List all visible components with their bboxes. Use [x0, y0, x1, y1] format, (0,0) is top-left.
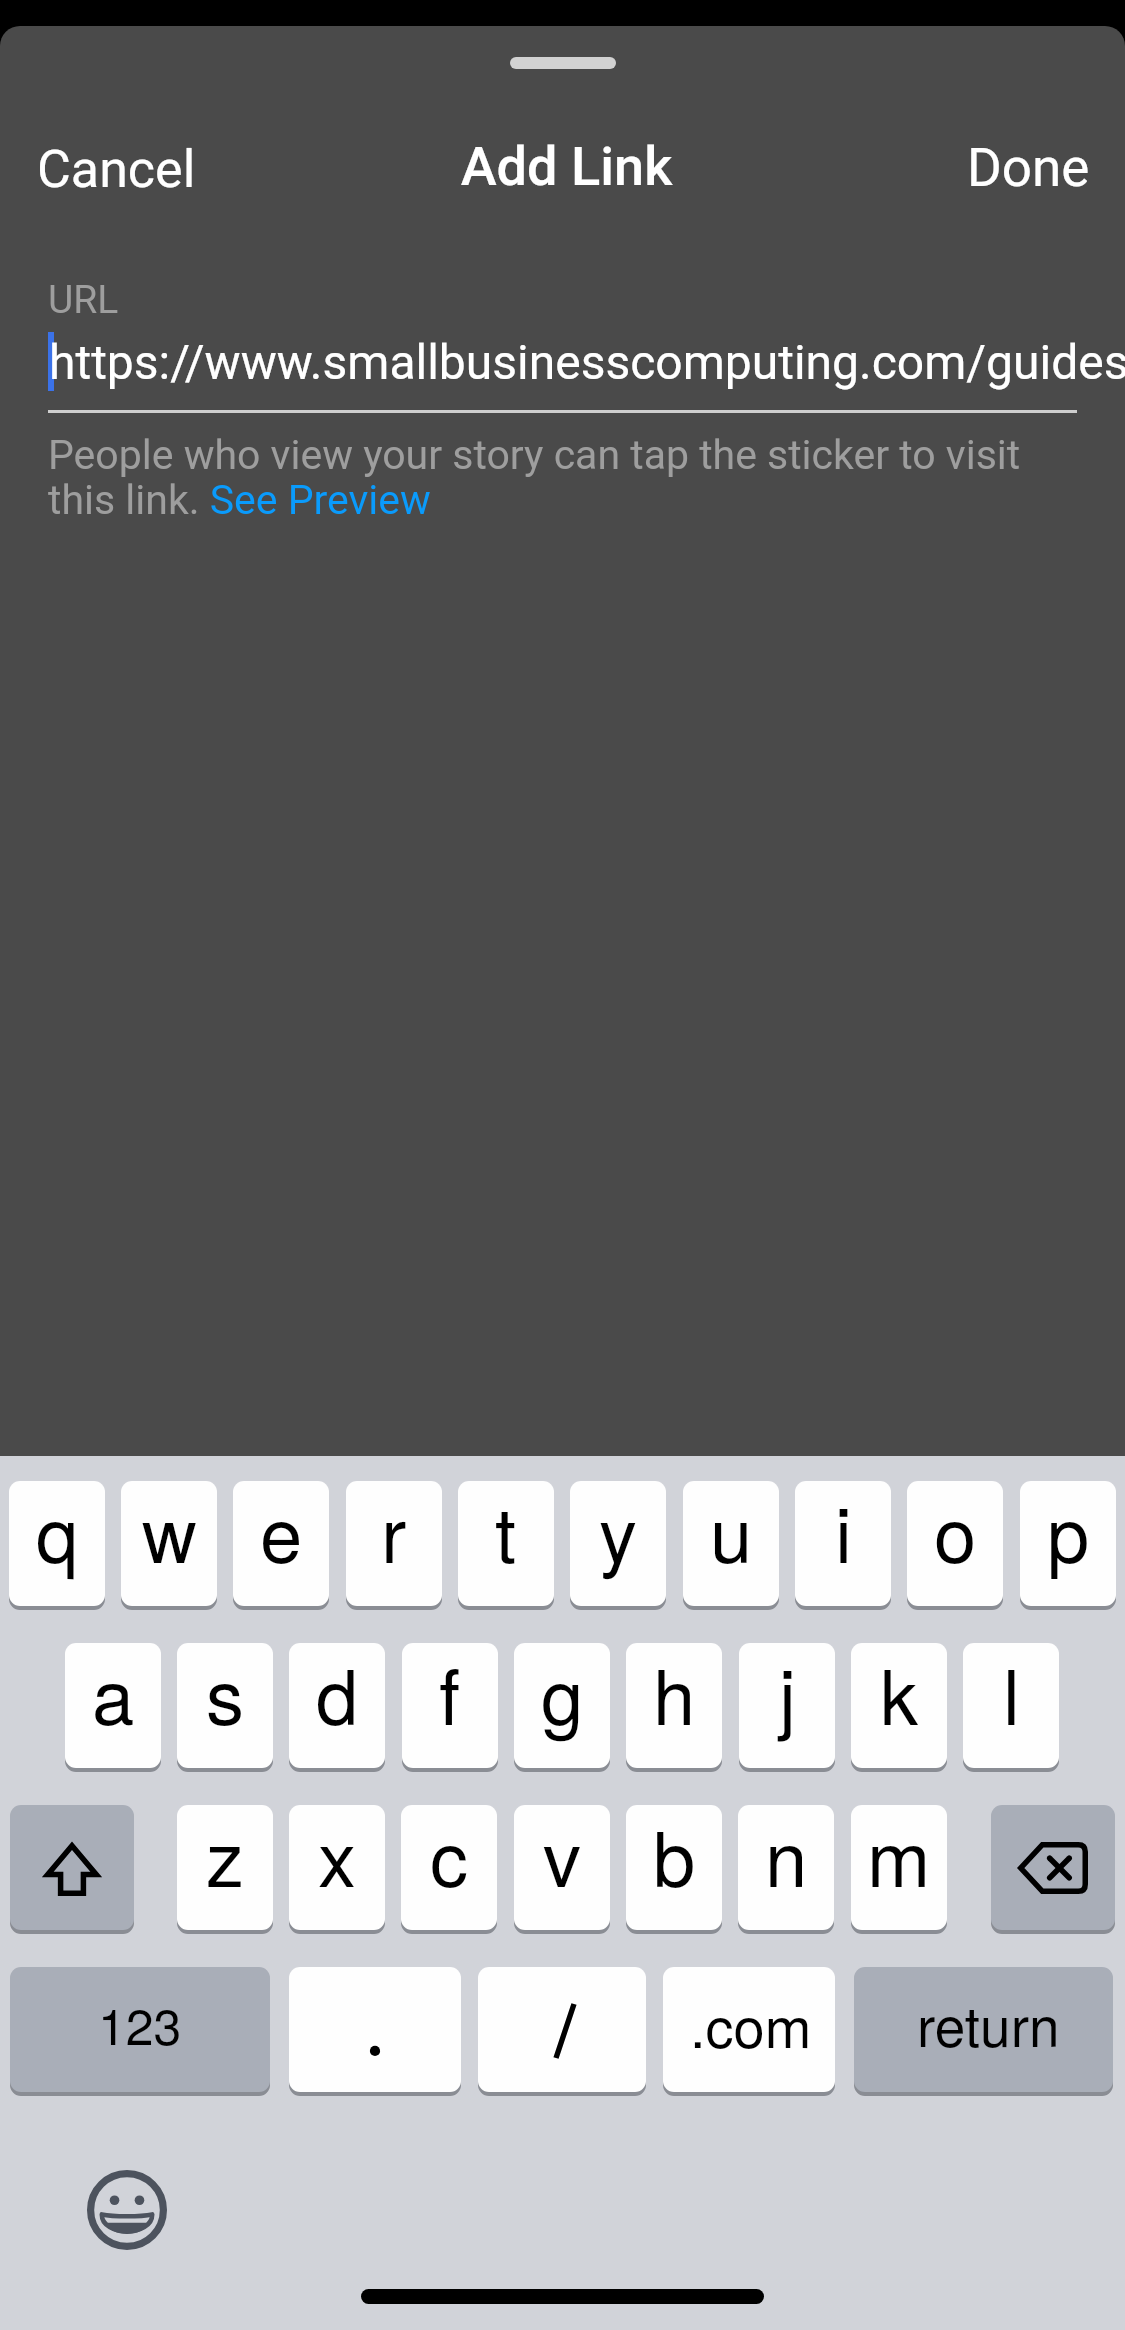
- staticText: b: [653, 1805, 696, 1909]
- staticText: c: [430, 1805, 468, 1909]
- staticText: q: [36, 1481, 79, 1585]
- button[interactable]: j: [739, 1643, 835, 1768]
- staticText: URL: [48, 277, 119, 323]
- staticText: https://www.smallbusinesscomputing.com/g…: [49, 334, 1125, 390]
- button[interactable]: q: [9, 1481, 105, 1606]
- button[interactable]: d: [289, 1643, 385, 1768]
- button[interactable]: 123: [10, 1967, 270, 2092]
- button[interactable]: Emoji keyboard: [87, 2170, 167, 2250]
- button[interactable]: h: [626, 1643, 722, 1768]
- staticText: o: [934, 1481, 977, 1585]
- button[interactable]: n: [738, 1805, 834, 1930]
- staticText: v: [543, 1805, 581, 1909]
- staticText: s: [206, 1643, 244, 1747]
- staticText: 123: [98, 1988, 182, 2060]
- button[interactable]: Period: [289, 1967, 461, 2092]
- staticText: w: [142, 1481, 197, 1585]
- button[interactable]: People who view your story can tap the s…: [48, 431, 1021, 524]
- button[interactable]: i: [795, 1481, 891, 1606]
- staticText: n: [765, 1805, 808, 1909]
- button[interactable]: e: [233, 1481, 329, 1606]
- button[interactable]: w: [121, 1481, 217, 1606]
- button[interactable]: t: [458, 1481, 554, 1606]
- button[interactable]: r: [346, 1481, 442, 1606]
- staticText: k: [880, 1643, 918, 1747]
- button[interactable]: Backspace: [991, 1805, 1115, 1930]
- button[interactable]: z: [177, 1805, 273, 1930]
- button[interactable]: c: [401, 1805, 497, 1930]
- button[interactable]: p: [1020, 1481, 1116, 1606]
- staticText: j: [779, 1643, 796, 1747]
- button[interactable]: return: [854, 1967, 1113, 2092]
- staticText: a: [92, 1643, 135, 1747]
- staticText: h: [653, 1643, 696, 1747]
- staticText: Done: [967, 137, 1090, 199]
- staticText: m: [867, 1805, 931, 1909]
- staticText: l: [1003, 1643, 1020, 1747]
- button[interactable]: u: [683, 1481, 779, 1606]
- button[interactable]: m: [851, 1805, 947, 1930]
- button[interactable]: a: [65, 1643, 161, 1768]
- staticText: return: [917, 1984, 1060, 2063]
- staticText: Add Link: [4, 135, 1125, 198]
- button[interactable]: URL: [48, 266, 1125, 414]
- button[interactable]: f: [402, 1643, 498, 1768]
- staticText: p: [1047, 1481, 1090, 1585]
- button[interactable]: s: [177, 1643, 273, 1768]
- staticText: .com: [690, 1984, 812, 2064]
- button[interactable]: v: [514, 1805, 610, 1930]
- button[interactable]: y: [570, 1481, 666, 1606]
- button[interactable]: Cancel: [10, 124, 220, 214]
- staticText: g: [541, 1643, 584, 1747]
- button[interactable]: Done: [920, 123, 1115, 213]
- staticText: d: [316, 1643, 359, 1747]
- staticText: Cancel: [37, 139, 196, 200]
- staticText: x: [318, 1805, 356, 1909]
- button[interactable]: .com: [663, 1967, 835, 2092]
- staticText: r: [381, 1481, 407, 1585]
- button[interactable]: Slash: [478, 1967, 646, 2092]
- button[interactable]: o: [907, 1481, 1003, 1606]
- staticText: z: [206, 1805, 244, 1909]
- staticText: f: [439, 1643, 461, 1747]
- staticText: t: [495, 1481, 517, 1585]
- button[interactable]: k: [851, 1643, 947, 1768]
- button[interactable]: b: [626, 1805, 722, 1930]
- staticText: e: [260, 1481, 303, 1585]
- staticText: y: [599, 1481, 637, 1585]
- button[interactable]: l: [963, 1643, 1059, 1768]
- button[interactable]: g: [514, 1643, 610, 1768]
- staticText: u: [710, 1481, 753, 1585]
- button[interactable]: Dismiss sheet: [483, 32, 643, 94]
- button[interactable]: Shift: [10, 1805, 134, 1930]
- staticText: i: [835, 1481, 852, 1585]
- button[interactable]: x: [289, 1805, 385, 1930]
